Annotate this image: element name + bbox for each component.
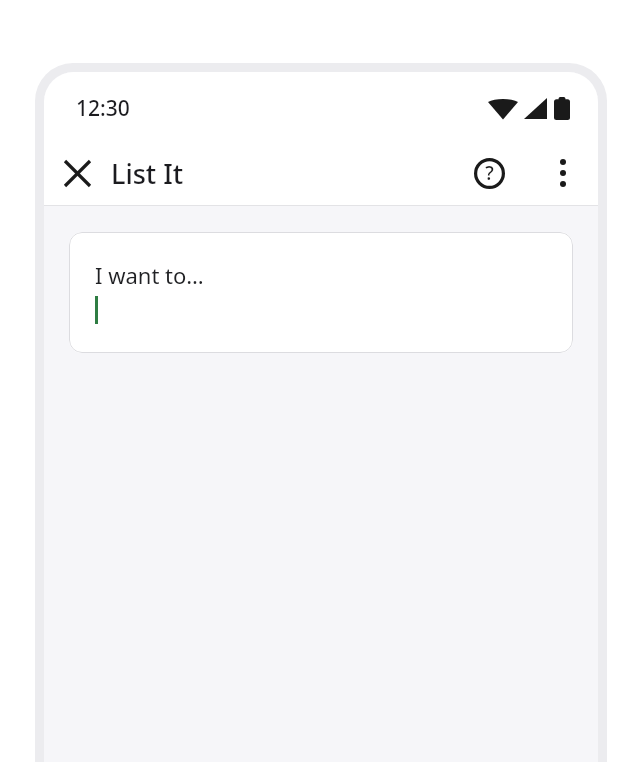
staticText: List It <box>111 155 184 192</box>
button[interactable]: I want to… <box>69 232 573 353</box>
button[interactable]: Close <box>53 149 101 197</box>
button[interactable]: Help <box>465 149 513 197</box>
button[interactable]: More options <box>539 149 587 197</box>
staticText: I want to… <box>95 260 204 290</box>
staticText: ? <box>485 160 494 186</box>
staticText: 12:30 <box>76 94 130 123</box>
